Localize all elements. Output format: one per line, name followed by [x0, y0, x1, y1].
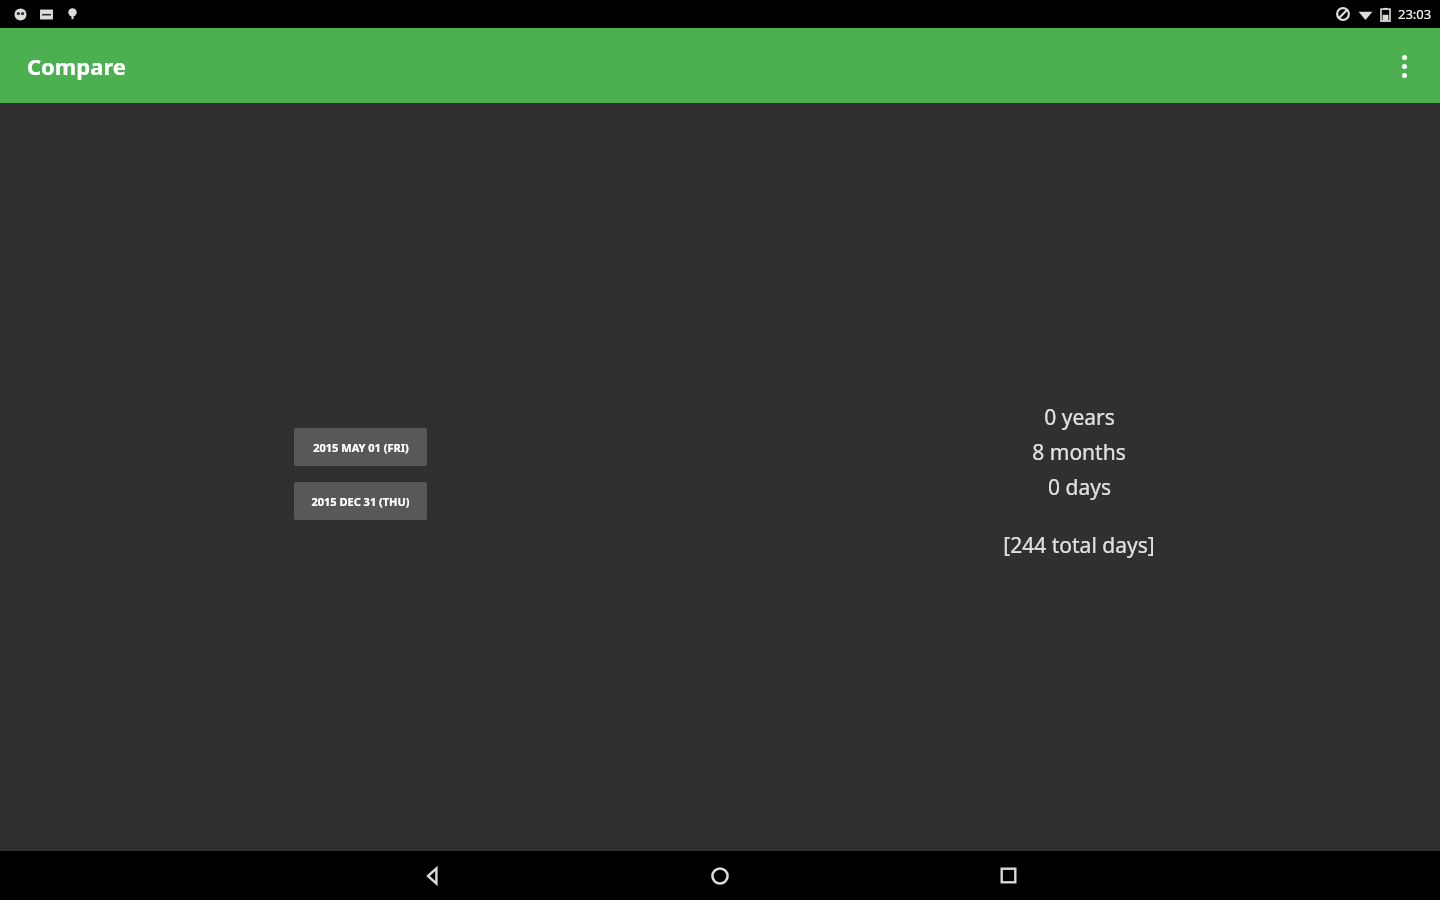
staticText: 8 months [1032, 438, 1126, 467]
button[interactable]: Home [576, 851, 864, 900]
staticText: 0 days [1048, 473, 1111, 502]
staticText: 0 years [1044, 403, 1115, 432]
button[interactable]: More options [1378, 40, 1430, 92]
staticText: 23:03 [1398, 5, 1432, 23]
staticText: [244 total days] [1003, 531, 1155, 560]
button[interactable]: 2015 MAY 01 (FRI) [294, 428, 427, 466]
staticText: Compare [27, 51, 126, 81]
button[interactable]: Back [288, 851, 576, 900]
button[interactable]: 2015 DEC 31 (THU) [294, 482, 427, 520]
button[interactable]: Recent apps [864, 851, 1152, 900]
staticText: 2015 DEC 31 (THU) [311, 494, 410, 509]
staticText: 2015 MAY 01 (FRI) [313, 440, 409, 455]
